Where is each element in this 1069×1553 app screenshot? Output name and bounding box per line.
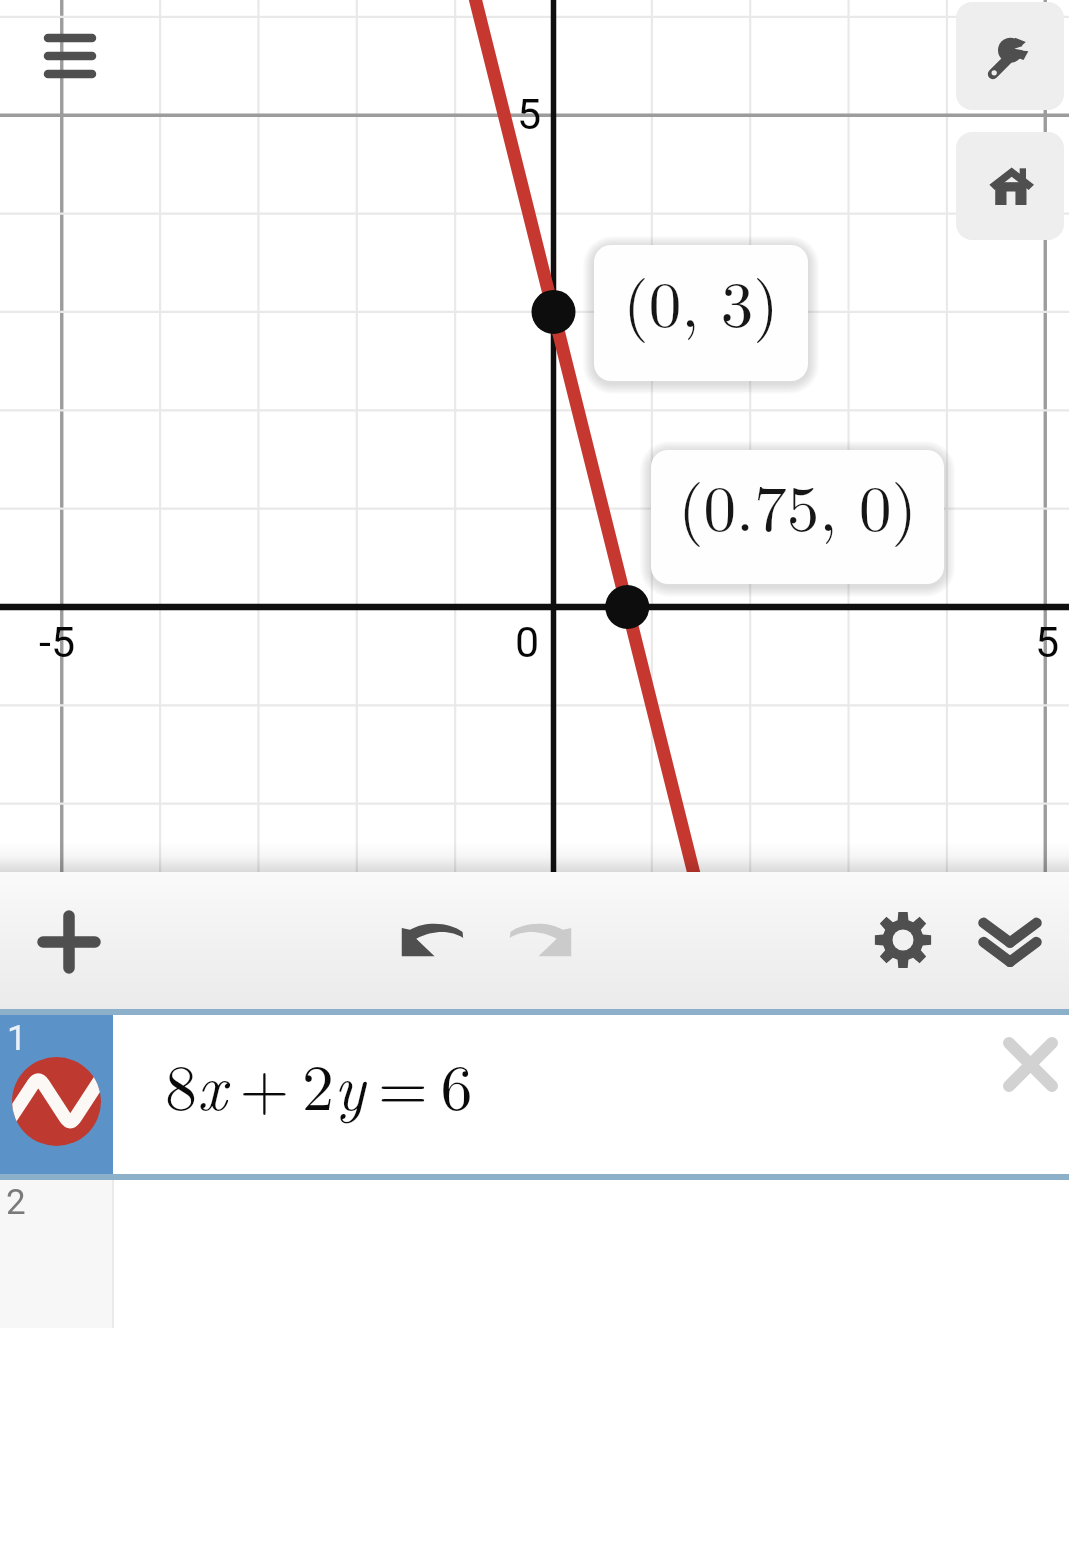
button[interactable]: Redo <box>490 891 592 985</box>
staticText: (0, 3) <box>623 254 779 346</box>
button[interactable]: Delete row <box>985 1019 1069 1109</box>
staticText: -5 <box>39 617 76 667</box>
button[interactable]: Menu <box>20 6 120 110</box>
button[interactable]: 2 <box>0 1180 1069 1328</box>
button[interactable]: 1 <box>0 1015 1069 1174</box>
staticText: 5 <box>1035 617 1060 667</box>
staticText: (0.75, 0) <box>678 458 917 550</box>
button[interactable]: Tools <box>956 2 1064 110</box>
button[interactable]: Collapse <box>959 896 1061 992</box>
staticText: 0 <box>515 617 540 667</box>
staticText: 2 <box>6 1182 26 1223</box>
button[interactable]: Undo <box>381 891 483 985</box>
staticText: 5 <box>517 89 542 139</box>
button[interactable]: Add <box>18 892 120 992</box>
button[interactable]: Home <box>956 132 1064 240</box>
button[interactable]: Settings <box>851 883 955 997</box>
staticText: 1 <box>7 1018 27 1059</box>
staticText: 8x + 2y = 6 <box>165 1038 473 1129</box>
